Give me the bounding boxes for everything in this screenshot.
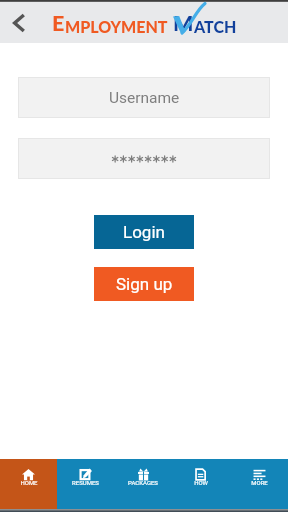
staticText: E — [52, 10, 65, 36]
staticText: Sign up — [116, 274, 173, 294]
button[interactable]: Username — [19, 78, 269, 117]
staticText: HOW — [194, 479, 208, 486]
button[interactable]: PACKAGES — [114, 459, 172, 509]
button[interactable]: MORE — [230, 459, 288, 509]
staticText: MPLOYMENT — [65, 17, 168, 36]
button[interactable]: Sign up — [94, 267, 194, 301]
staticText: M — [173, 10, 194, 36]
button[interactable]: HOW — [172, 459, 230, 509]
button[interactable]: RESUMES — [57, 459, 114, 509]
staticText: Login — [123, 222, 165, 242]
staticText: ATCH — [194, 17, 237, 36]
staticText: PACKAGES — [128, 479, 158, 486]
staticText: RESUMES — [72, 479, 99, 486]
button[interactable]: Password — [19, 139, 269, 178]
staticText: HOME — [20, 479, 38, 486]
staticText: Username — [109, 89, 180, 107]
button[interactable]: Back — [0, 4, 38, 42]
staticText: MORE — [251, 479, 268, 486]
button[interactable]: Login — [94, 215, 194, 249]
button[interactable]: HOME — [0, 459, 57, 509]
